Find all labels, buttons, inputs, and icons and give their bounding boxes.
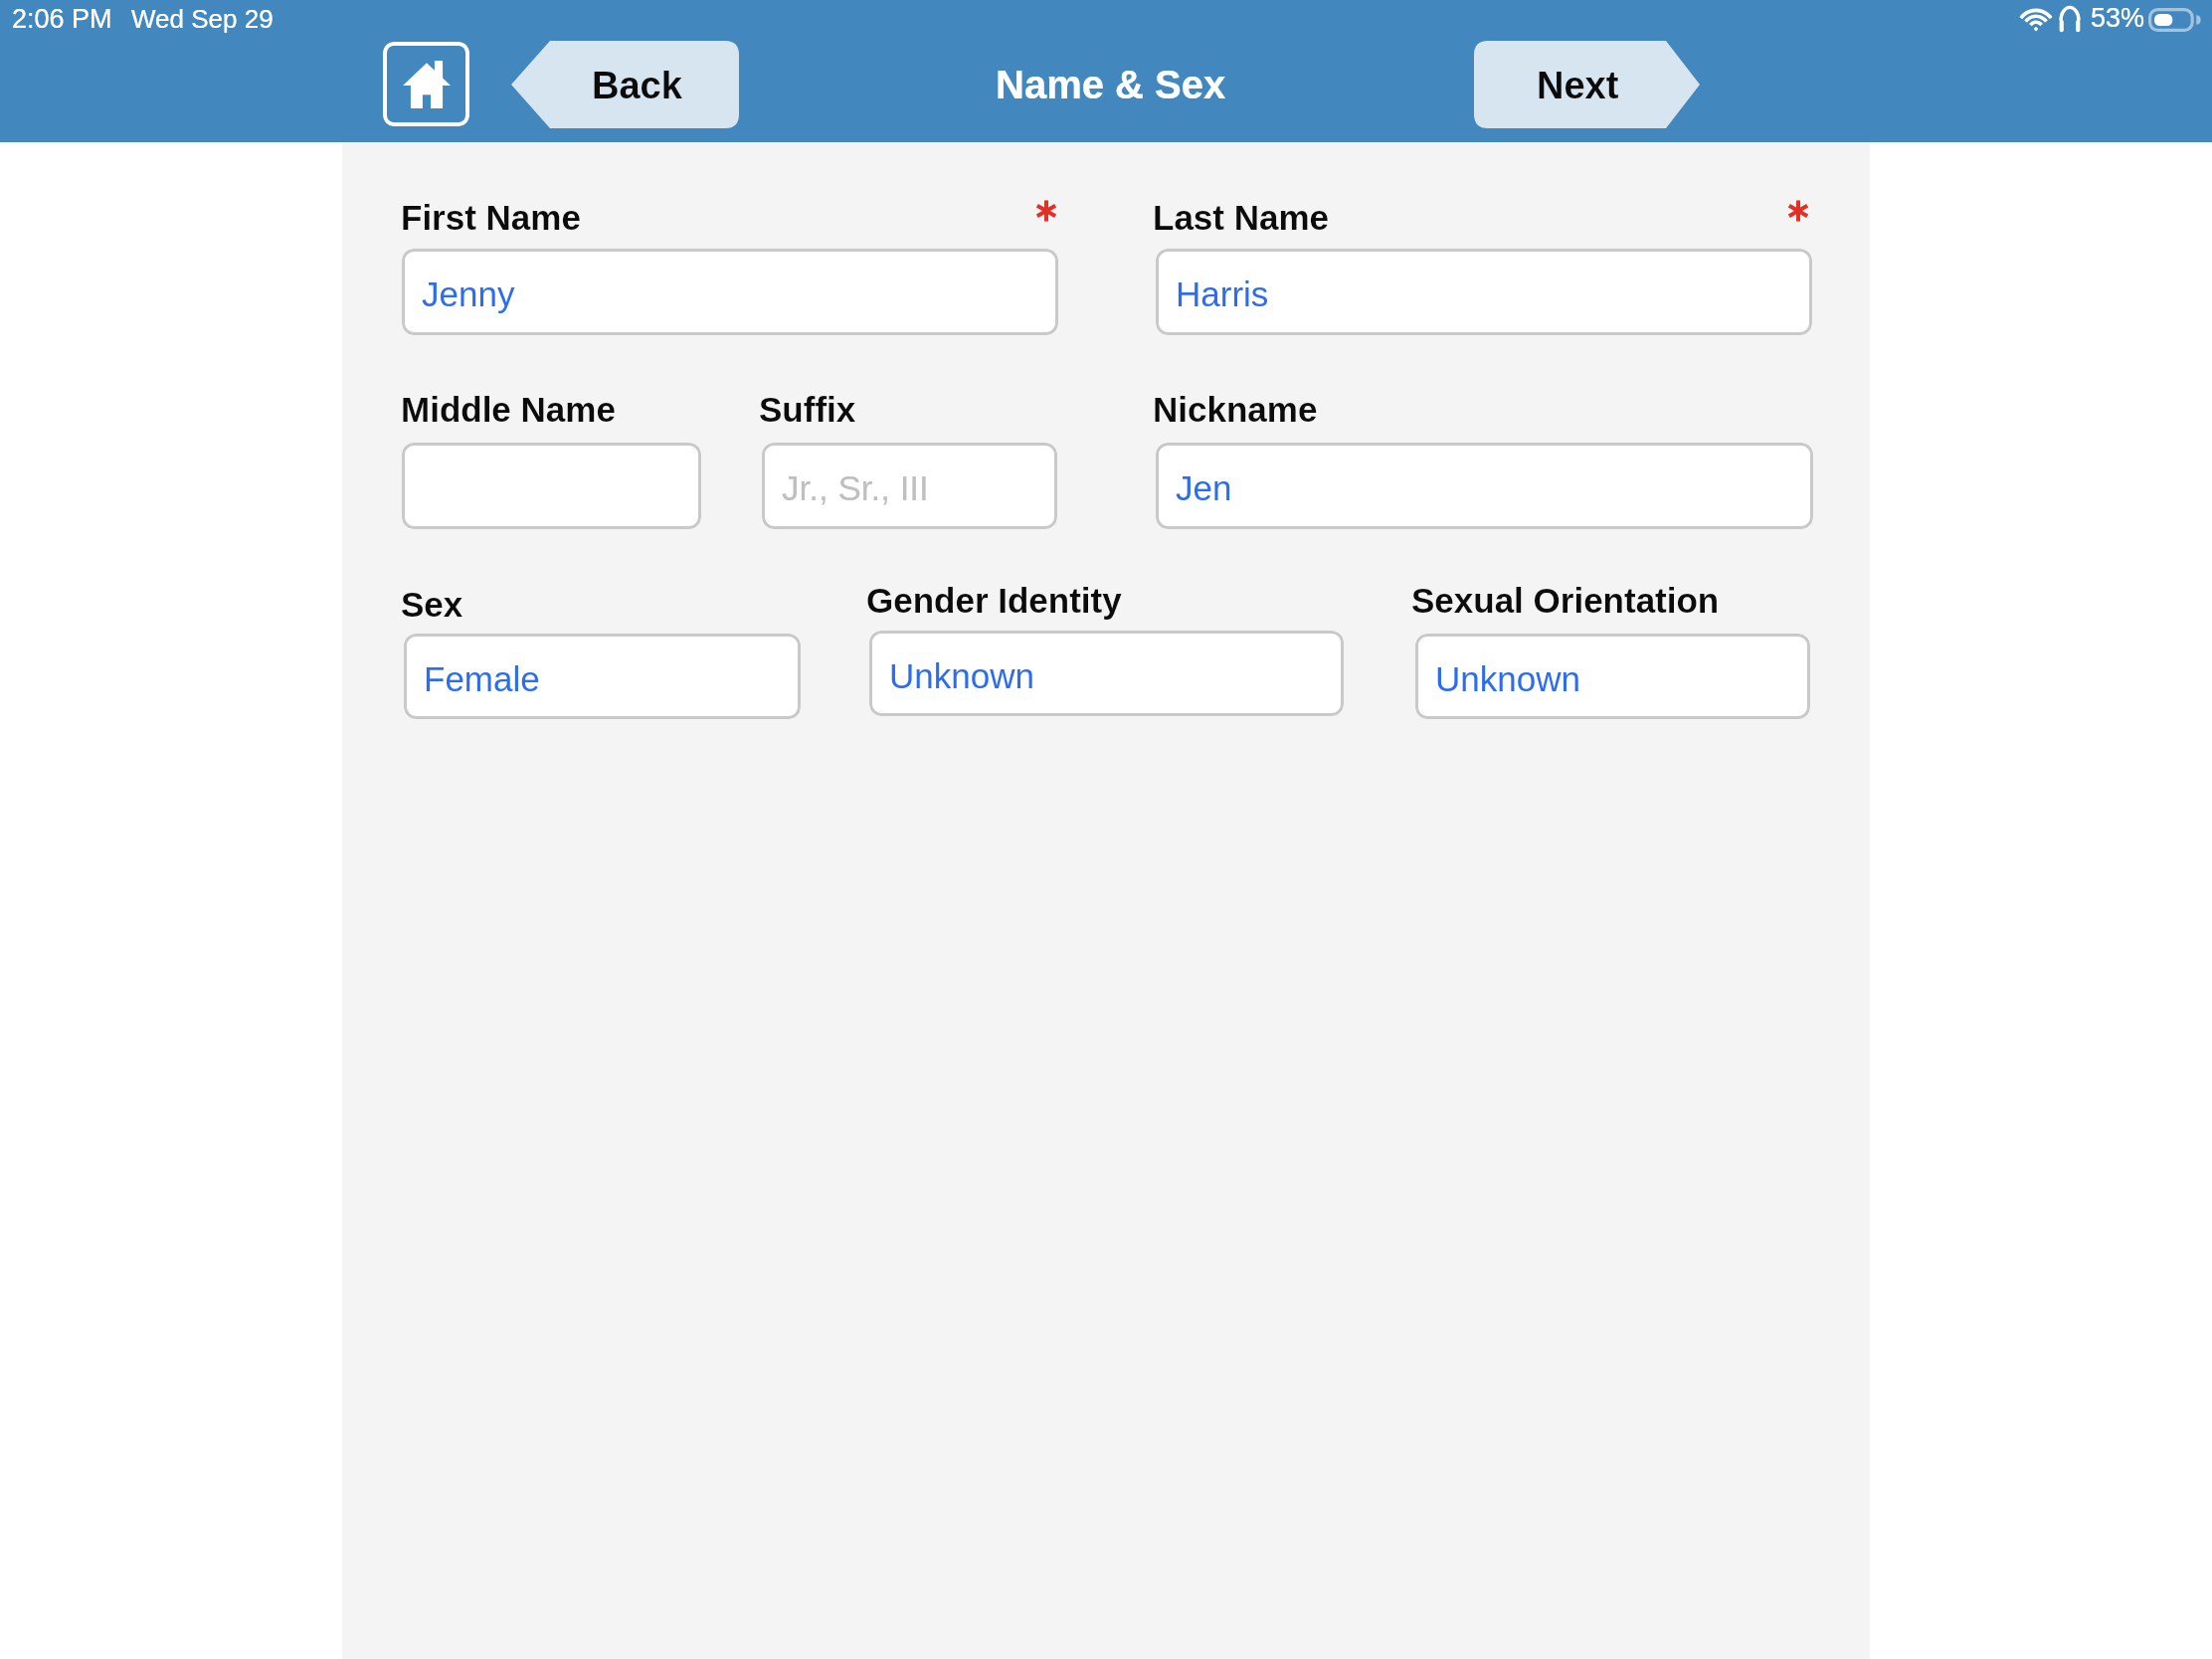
staticText: Jr., Sr., III xyxy=(782,468,929,507)
staticText: Suffix xyxy=(759,390,856,429)
button[interactable]: Harris xyxy=(1156,249,1812,335)
staticText: Next xyxy=(1537,65,1619,106)
staticText: Jenny xyxy=(422,275,515,313)
staticText: Gender Identity xyxy=(866,581,1122,620)
staticText: Sexual Orientation xyxy=(1411,581,1720,620)
staticText: Back xyxy=(592,65,682,106)
staticText: Harris xyxy=(1176,275,1269,313)
button[interactable]: Unknown xyxy=(869,631,1344,716)
button[interactable]: Female xyxy=(404,634,801,719)
staticText: Nickname xyxy=(1153,390,1318,429)
button[interactable]: Next xyxy=(1474,41,1700,128)
staticText: Jen xyxy=(1176,468,1232,507)
staticText: Female xyxy=(424,659,540,698)
staticText: 53% xyxy=(2091,3,2145,33)
staticText: Sex xyxy=(401,585,463,624)
button[interactable]: Jr., Sr., III xyxy=(762,443,1057,529)
staticText: Unknown xyxy=(889,656,1034,695)
button[interactable]: Jen xyxy=(1156,443,1813,529)
button[interactable]: Unknown xyxy=(1415,634,1810,719)
staticText: Middle Name xyxy=(401,390,616,429)
staticText: Last Name xyxy=(1153,198,1330,237)
staticText: Unknown xyxy=(1435,659,1580,698)
staticText: Name & Sex xyxy=(996,63,1226,107)
staticText: Wed Sep 29 xyxy=(131,4,274,33)
staticText: 2:06 PM xyxy=(12,4,112,34)
button[interactable] xyxy=(402,443,701,529)
button[interactable]: Jenny xyxy=(402,249,1058,335)
button[interactable]: Back xyxy=(511,41,739,128)
staticText: First Name xyxy=(401,198,581,237)
button[interactable]: Home xyxy=(383,42,469,126)
